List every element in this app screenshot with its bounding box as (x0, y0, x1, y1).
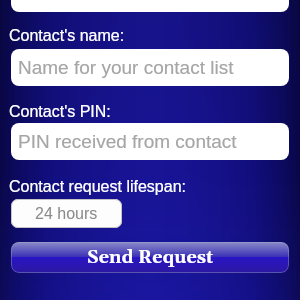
button[interactable]: PIN received from contact (11, 123, 289, 160)
staticText: 24 hours (35, 205, 98, 223)
button[interactable]: Name for your contact list (11, 49, 289, 86)
button[interactable] (11, 0, 289, 12)
staticText: Send Request (87, 246, 214, 269)
staticText: Contact's PIN: (9, 103, 111, 121)
staticText: Contact's name: (9, 27, 125, 45)
button[interactable]: Send Request (11, 242, 289, 273)
staticText: Contact request lifespan: (9, 178, 186, 196)
button[interactable]: 24 hours (11, 199, 122, 228)
staticText: PIN received from contact (18, 131, 237, 152)
staticText: Name for your contact list (18, 57, 234, 78)
